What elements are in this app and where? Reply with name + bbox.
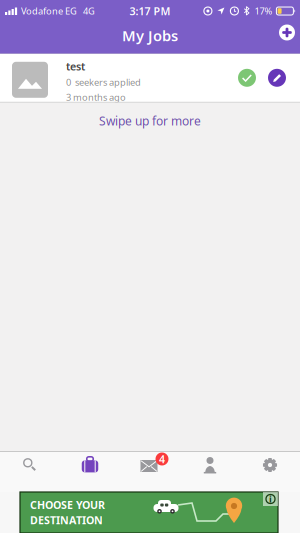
staticText: 4G (83, 5, 95, 17)
button[interactable]: Settings (240, 452, 300, 492)
button[interactable]: Search (0, 452, 60, 492)
button[interactable]: Profile (180, 452, 240, 492)
staticText: 17% (254, 5, 272, 17)
staticText: My Jobs (122, 26, 178, 45)
button[interactable]: test (0, 54, 300, 102)
staticText: 4 (159, 452, 165, 466)
staticText: 0 seekers applied (66, 76, 141, 88)
button[interactable]: Add Job (275, 25, 299, 49)
staticText: Swipe up for more (99, 113, 201, 129)
staticText: i (269, 493, 272, 505)
button[interactable]: My Jobs (60, 452, 120, 492)
staticText: 3:17 PM (129, 4, 170, 18)
staticText: test (66, 59, 85, 73)
staticText: CHOOSE YOUR (30, 498, 105, 512)
staticText: Vodafone EG (21, 5, 77, 17)
button[interactable]: Messages (120, 452, 180, 492)
staticText: 3 months ago (66, 91, 126, 103)
staticText: DESTINATION (30, 513, 103, 527)
button[interactable]: Advertisement: Choose your destination (20, 492, 278, 533)
